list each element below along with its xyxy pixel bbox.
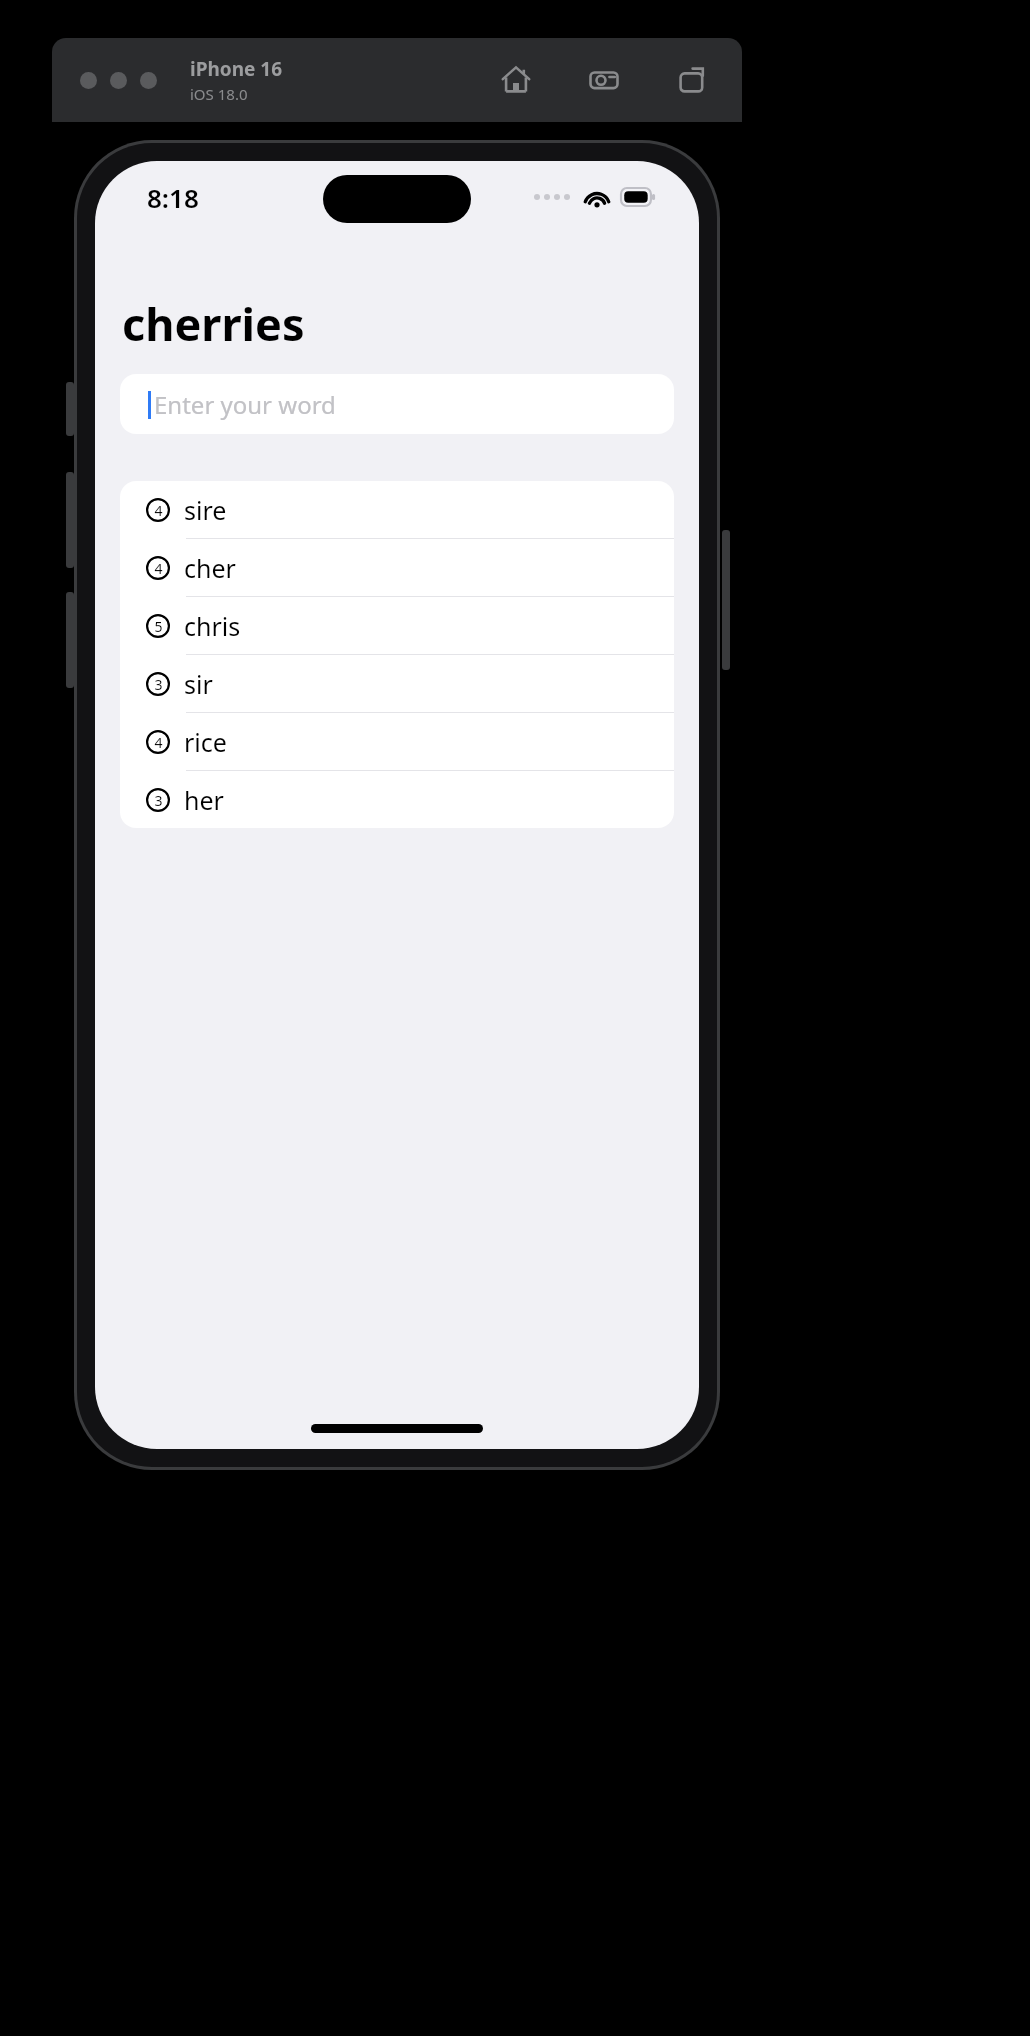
staticText: 8:18: [147, 180, 199, 215]
staticText: sire: [184, 493, 227, 527]
button[interactable]: Home: [496, 60, 536, 100]
button[interactable]: 4: [120, 481, 674, 539]
button[interactable]: [140, 72, 157, 89]
button[interactable]: 5: [120, 597, 674, 655]
button[interactable]: [80, 72, 97, 89]
button[interactable]: 4: [120, 539, 674, 597]
button[interactable]: [110, 72, 127, 89]
button[interactable]: Screenshot: [584, 60, 624, 100]
staticText: 3: [154, 791, 163, 810]
button[interactable]: Volume up: [66, 472, 74, 568]
button[interactable]: Rotate: [672, 60, 712, 100]
button[interactable]: 3: [120, 655, 674, 713]
button[interactable]: 3: [120, 771, 674, 828]
staticText: iOS 18.0: [190, 84, 248, 104]
staticText: 3: [154, 675, 163, 694]
button[interactable]: 4: [120, 713, 674, 771]
staticText: her: [184, 783, 224, 817]
button[interactable]: Silence: [66, 382, 74, 436]
staticText: Enter your word: [154, 388, 336, 421]
staticText: 5: [154, 617, 163, 636]
staticText: 4: [154, 733, 163, 752]
staticText: cherries: [122, 293, 305, 354]
staticText: sir: [184, 667, 213, 701]
staticText: 4: [154, 501, 163, 520]
staticText: iPhone 16: [190, 56, 283, 82]
button[interactable]: Power: [722, 530, 730, 670]
staticText: cher: [184, 551, 236, 585]
button[interactable]: Volume down: [66, 592, 74, 688]
staticText: 4: [154, 559, 163, 578]
staticText: chris: [184, 609, 241, 643]
staticText: rice: [184, 725, 227, 759]
button[interactable]: Enter your word: [120, 374, 674, 434]
